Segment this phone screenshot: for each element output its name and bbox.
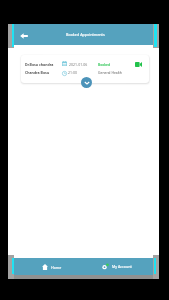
staticText: General Health	[98, 70, 122, 75]
button[interactable]: Video call	[133, 59, 143, 69]
staticText: Home	[51, 265, 62, 270]
button[interactable]: Back	[15, 27, 32, 44]
button[interactable]: Home	[29, 258, 74, 275]
staticText: Booked Appointments	[66, 32, 105, 37]
button[interactable]: My Account	[92, 258, 141, 275]
button[interactable]: Expand appointment	[81, 77, 92, 88]
button[interactable]	[21, 55, 149, 83]
staticText: Dr.Bosu chandra	[25, 62, 54, 67]
staticText: My Account	[112, 264, 132, 269]
staticText: Booked	[98, 62, 111, 67]
staticText: 21:00	[68, 70, 77, 75]
staticText: Chandra Bosu	[25, 70, 50, 75]
staticText: 2021-01-06	[69, 62, 88, 67]
